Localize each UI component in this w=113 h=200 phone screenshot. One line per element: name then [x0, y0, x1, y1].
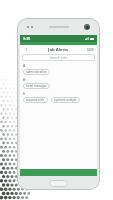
button[interactable]: Save	[87, 46, 94, 53]
staticText: A	[23, 64, 26, 68]
button[interactable]: Home	[49, 180, 68, 187]
staticText: Job Alerts	[48, 47, 69, 53]
button[interactable]: support-tech	[23, 97, 48, 103]
staticText: Search jobs	[50, 56, 68, 60]
button[interactable]: systems analyst	[51, 97, 80, 103]
staticText: 9:30	[23, 36, 31, 41]
button[interactable]: administration	[23, 69, 50, 75]
button[interactable]: hotel manager	[23, 83, 50, 89]
staticText: systems analyst	[54, 98, 77, 102]
staticText: S	[23, 92, 25, 96]
button[interactable]: Search jobs	[22, 54, 95, 61]
staticText: hotel manager	[26, 84, 47, 88]
staticText: SAVE	[87, 48, 94, 52]
staticText: support-tech	[26, 98, 45, 102]
staticText: H	[23, 78, 26, 82]
button[interactable]: Back	[23, 46, 30, 53]
staticText: administration	[26, 70, 47, 74]
